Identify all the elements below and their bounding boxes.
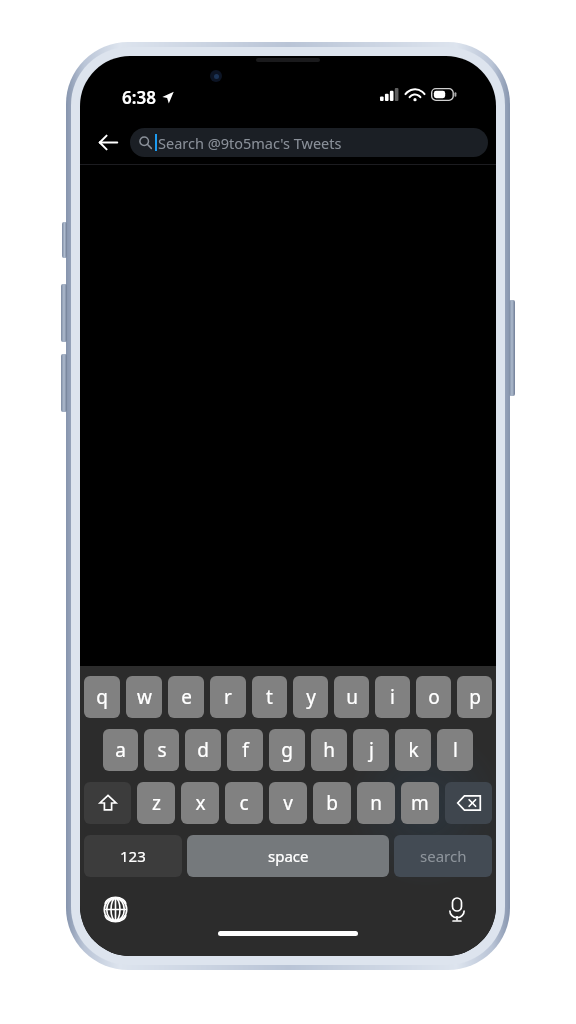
- staticText: i: [390, 684, 395, 710]
- button[interactable]: 123: [84, 835, 182, 877]
- button[interactable]: b: [313, 782, 351, 824]
- staticText: j: [369, 737, 374, 763]
- button[interactable]: s: [144, 729, 179, 771]
- button[interactable]: z: [137, 782, 175, 824]
- staticText: m: [411, 790, 429, 816]
- button[interactable]: y: [293, 676, 328, 718]
- staticText: y: [306, 684, 316, 710]
- button[interactable]: space: [187, 835, 389, 877]
- staticText: Search @9to5mac's Tweets: [158, 133, 342, 153]
- staticText: a: [115, 737, 126, 763]
- staticText: k: [408, 737, 419, 763]
- staticText: w: [137, 684, 152, 710]
- button[interactable]: m: [401, 782, 439, 824]
- staticText: c: [239, 790, 249, 816]
- button[interactable]: i: [375, 676, 410, 718]
- staticText: g: [281, 737, 293, 763]
- staticText: p: [469, 684, 481, 710]
- button[interactable]: v: [269, 782, 307, 824]
- staticText: t: [266, 684, 273, 710]
- button[interactable]: t: [252, 676, 287, 718]
- button[interactable]: u: [334, 676, 369, 718]
- staticText: e: [181, 684, 192, 710]
- button[interactable]: c: [225, 782, 263, 824]
- staticText: l: [453, 737, 458, 763]
- staticText: h: [323, 737, 335, 763]
- button[interactable]: k: [395, 729, 431, 771]
- button[interactable]: d: [185, 729, 221, 771]
- button[interactable]: Dictation: [440, 892, 474, 926]
- button[interactable]: f: [227, 729, 263, 771]
- button[interactable]: q: [84, 676, 120, 718]
- button[interactable]: o: [416, 676, 451, 718]
- button[interactable]: p: [457, 676, 492, 718]
- staticText: d: [197, 737, 209, 763]
- staticText: space: [268, 846, 309, 866]
- button[interactable]: r: [210, 676, 246, 718]
- staticText: n: [370, 790, 382, 816]
- staticText: x: [195, 790, 206, 816]
- button[interactable]: w: [126, 676, 162, 718]
- button[interactable]: a: [103, 729, 138, 771]
- staticText: search: [420, 846, 467, 866]
- button[interactable]: Backspace: [445, 782, 492, 824]
- button[interactable]: Change keyboard language: [98, 892, 132, 926]
- staticText: o: [428, 684, 440, 710]
- button[interactable]: j: [353, 729, 389, 771]
- button[interactable]: g: [269, 729, 305, 771]
- button[interactable]: h: [311, 729, 347, 771]
- button[interactable]: x: [181, 782, 219, 824]
- button[interactable]: Search @9to5mac's Tweets: [130, 128, 488, 157]
- staticText: f: [242, 737, 249, 763]
- button[interactable]: search: [394, 835, 492, 877]
- button[interactable]: Shift: [84, 782, 131, 824]
- staticText: 6:38: [122, 86, 156, 109]
- staticText: v: [283, 790, 293, 816]
- staticText: u: [346, 684, 358, 710]
- staticText: z: [152, 790, 161, 816]
- staticText: r: [224, 684, 232, 710]
- button[interactable]: e: [168, 676, 204, 718]
- staticText: q: [96, 684, 108, 710]
- staticText: 123: [120, 846, 146, 866]
- staticText: b: [326, 790, 338, 816]
- button[interactable]: Back: [90, 124, 126, 160]
- button[interactable]: l: [437, 729, 473, 771]
- staticText: s: [157, 737, 167, 763]
- button[interactable]: n: [357, 782, 395, 824]
